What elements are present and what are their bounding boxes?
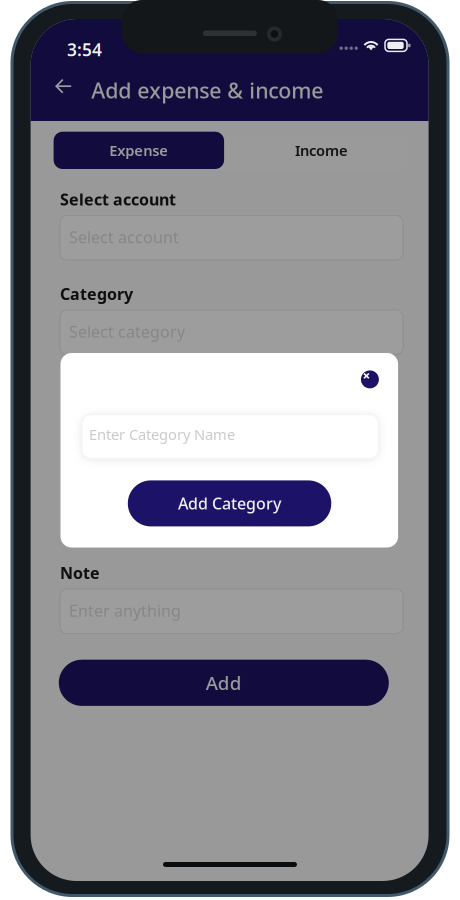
staticText: 3:54 (67, 38, 102, 61)
staticText: Enter anything (69, 600, 181, 621)
button[interactable]: Close (361, 370, 379, 388)
staticText: Select account (69, 226, 179, 248)
staticText: Add expense & income (91, 76, 323, 104)
button[interactable]: Income (233, 132, 409, 169)
button[interactable]: Expense (54, 132, 224, 169)
staticText: Enter Category Name (89, 424, 235, 444)
staticText: Add Category (178, 493, 281, 514)
button[interactable]: Select account (60, 215, 403, 260)
staticText: Add (206, 670, 242, 695)
button[interactable]: Add Category (128, 480, 331, 526)
button[interactable]: Add (59, 660, 389, 706)
button[interactable]: Back (55, 78, 72, 95)
staticText: Income (295, 141, 348, 160)
staticText: Category (60, 283, 133, 304)
staticText: Note (60, 562, 100, 583)
button[interactable]: Select category (60, 310, 403, 355)
staticText: Expense (109, 141, 168, 160)
button[interactable]: Enter anything (60, 589, 403, 634)
staticText: Select category (69, 321, 185, 342)
staticText: Select account (60, 189, 176, 210)
